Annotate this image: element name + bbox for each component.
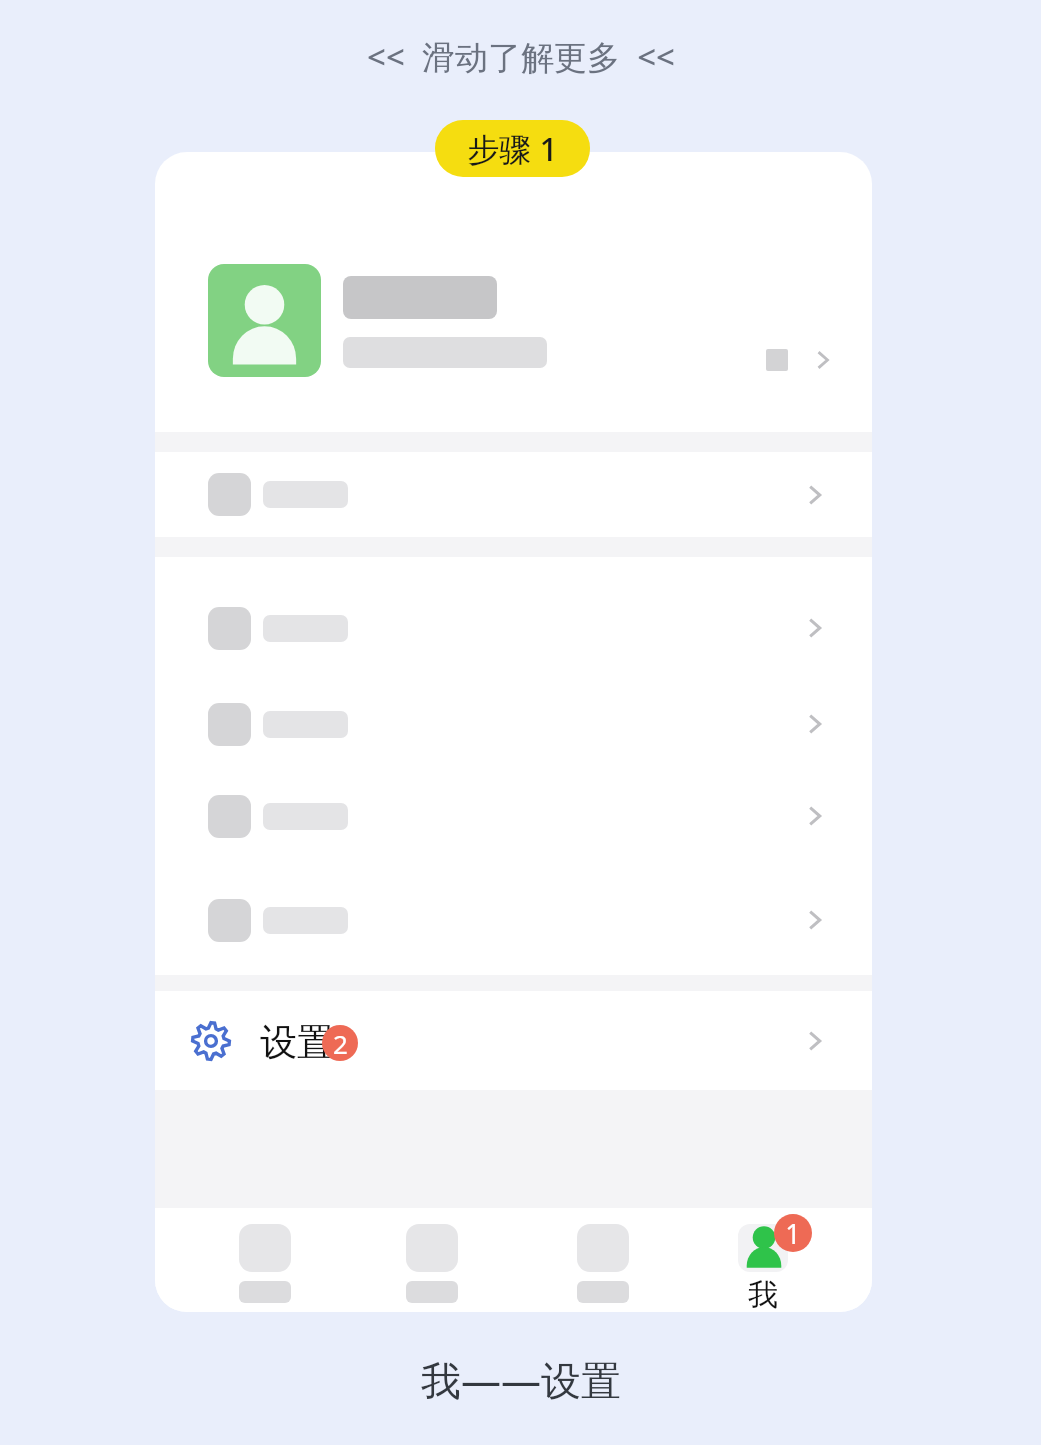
- button[interactable]: List item: [155, 452, 872, 537]
- staticText: 1: [785, 1215, 801, 1252]
- staticText: 我——设置: [421, 1352, 621, 1407]
- button[interactable]: 步骤 1: [435, 120, 590, 177]
- button[interactable]: Profile avatar: [208, 264, 321, 377]
- button[interactable]: Tab 1: [223, 1208, 307, 1312]
- button[interactable]: List item: [155, 678, 872, 770]
- staticText: 2: [333, 1026, 348, 1061]
- button[interactable]: List item: [155, 874, 872, 966]
- staticText: 步骤 1: [467, 127, 558, 171]
- button[interactable]: List item: [155, 582, 872, 674]
- button[interactable]: List item: [155, 770, 872, 862]
- staticText: 设置: [260, 1019, 334, 1066]
- button[interactable]: Tab 3: [561, 1208, 645, 1312]
- button[interactable]: Profile details: [755, 332, 845, 388]
- button[interactable]: Tab 2: [390, 1208, 474, 1312]
- staticText: << 滑动了解更多 <<: [367, 34, 675, 79]
- button[interactable]: 设置: [155, 991, 872, 1090]
- button[interactable]: 1: [720, 1208, 820, 1312]
- staticText: 我: [748, 1276, 778, 1312]
